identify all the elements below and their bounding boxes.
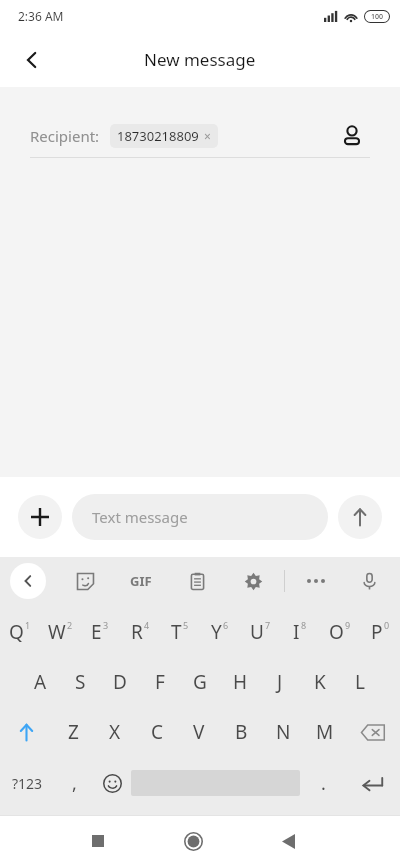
button[interactable]: N (262, 707, 304, 757)
staticText: V (193, 719, 205, 745)
staticText: R (131, 619, 143, 645)
staticText: K (314, 669, 326, 695)
button[interactable]: . (300, 757, 346, 809)
button[interactable]: M (304, 707, 346, 757)
button[interactable]: A (20, 657, 60, 707)
staticText: 6 (223, 619, 229, 631)
staticText: 3 (103, 619, 109, 631)
staticText: 2:36 AM (18, 8, 64, 24)
button[interactable]: ?123 (0, 757, 55, 809)
button[interactable]: Shift (0, 707, 53, 757)
button[interactable]: Add attachment (18, 495, 62, 539)
staticText: T (171, 619, 182, 645)
staticText: 18730218809 (117, 127, 199, 145)
button[interactable]: X (94, 707, 136, 757)
staticText: 4 (144, 619, 150, 631)
button[interactable]: More options (299, 564, 333, 598)
staticText: 7 (265, 619, 271, 631)
button[interactable]: Emoji (93, 757, 131, 809)
button[interactable]: , (55, 757, 93, 809)
staticText: P (371, 619, 383, 645)
button[interactable]: G (180, 657, 220, 707)
button[interactable]: R (120, 607, 160, 657)
staticText: 8 (301, 619, 307, 631)
button[interactable]: Back (8, 36, 56, 84)
staticText: , (72, 771, 77, 796)
staticText: Recipient: (30, 126, 100, 146)
button[interactable]: T (160, 607, 200, 657)
button[interactable]: Voice input (352, 564, 386, 598)
button[interactable]: 18730218809 (110, 124, 218, 148)
staticText: U (250, 619, 264, 645)
staticText: Q (9, 619, 24, 645)
staticText: 100 (371, 12, 384, 22)
staticText: Text message (92, 507, 188, 527)
staticText: 1 (25, 619, 31, 631)
staticText: 9 (345, 619, 351, 631)
button[interactable]: Stickers (68, 564, 102, 598)
staticText: A (34, 669, 47, 695)
button[interactable]: U (240, 607, 280, 657)
button[interactable]: Clipboard (180, 564, 214, 598)
staticText: L (355, 669, 365, 695)
staticText: S (75, 669, 86, 695)
staticText: New message (144, 48, 256, 71)
button[interactable]: Home (169, 817, 217, 865)
button[interactable]: Q (0, 607, 40, 657)
staticText: G (193, 669, 207, 695)
staticText: 0 (384, 619, 390, 631)
staticText: H (233, 669, 248, 695)
button[interactable]: Back (264, 817, 312, 865)
button[interactable]: Z (53, 707, 94, 757)
staticText: I (293, 619, 300, 645)
staticText: J (277, 669, 283, 695)
button[interactable]: Backspace (346, 707, 400, 757)
button[interactable]: P (360, 607, 400, 657)
button[interactable]: B (220, 707, 262, 757)
staticText: N (276, 719, 291, 745)
button[interactable]: F (140, 657, 180, 707)
staticText: Y (211, 619, 222, 645)
button[interactable]: E (80, 607, 120, 657)
staticText: M (316, 719, 334, 745)
staticText: X (109, 719, 121, 745)
staticText: Z (68, 719, 79, 745)
staticText: E (91, 619, 102, 645)
button[interactable]: J (260, 657, 300, 707)
button[interactable]: L (340, 657, 380, 707)
button[interactable]: I (280, 607, 320, 657)
staticText: 5 (183, 619, 189, 631)
button[interactable]: Send (338, 495, 382, 539)
button[interactable]: Enter (346, 757, 400, 809)
staticText: 2 (67, 619, 73, 631)
staticText: GIF (130, 572, 152, 590)
button[interactable]: D (100, 657, 140, 707)
button[interactable]: W (40, 607, 80, 657)
staticText: . (321, 771, 326, 796)
button[interactable]: Y (200, 607, 240, 657)
button[interactable]: GIF (122, 562, 160, 600)
button[interactable]: Recents (74, 817, 122, 865)
staticText: D (113, 669, 127, 695)
staticText: B (235, 719, 248, 745)
staticText: W (48, 619, 66, 645)
button[interactable]: H (220, 657, 260, 707)
button[interactable]: Text message (72, 494, 328, 540)
button[interactable]: Collapse toolbar (10, 563, 46, 599)
button[interactable]: V (178, 707, 220, 757)
staticText: × (204, 128, 211, 144)
staticText: ?123 (12, 774, 43, 793)
button[interactable]: S (60, 657, 100, 707)
button[interactable]: C (136, 707, 178, 757)
button[interactable]: O (320, 607, 360, 657)
staticText: O (329, 619, 344, 645)
button[interactable]: Settings (236, 564, 270, 598)
button[interactable]: K (300, 657, 340, 707)
staticText: F (155, 669, 165, 695)
button[interactable]: Choose contact (334, 118, 370, 154)
staticText: C (151, 719, 164, 745)
